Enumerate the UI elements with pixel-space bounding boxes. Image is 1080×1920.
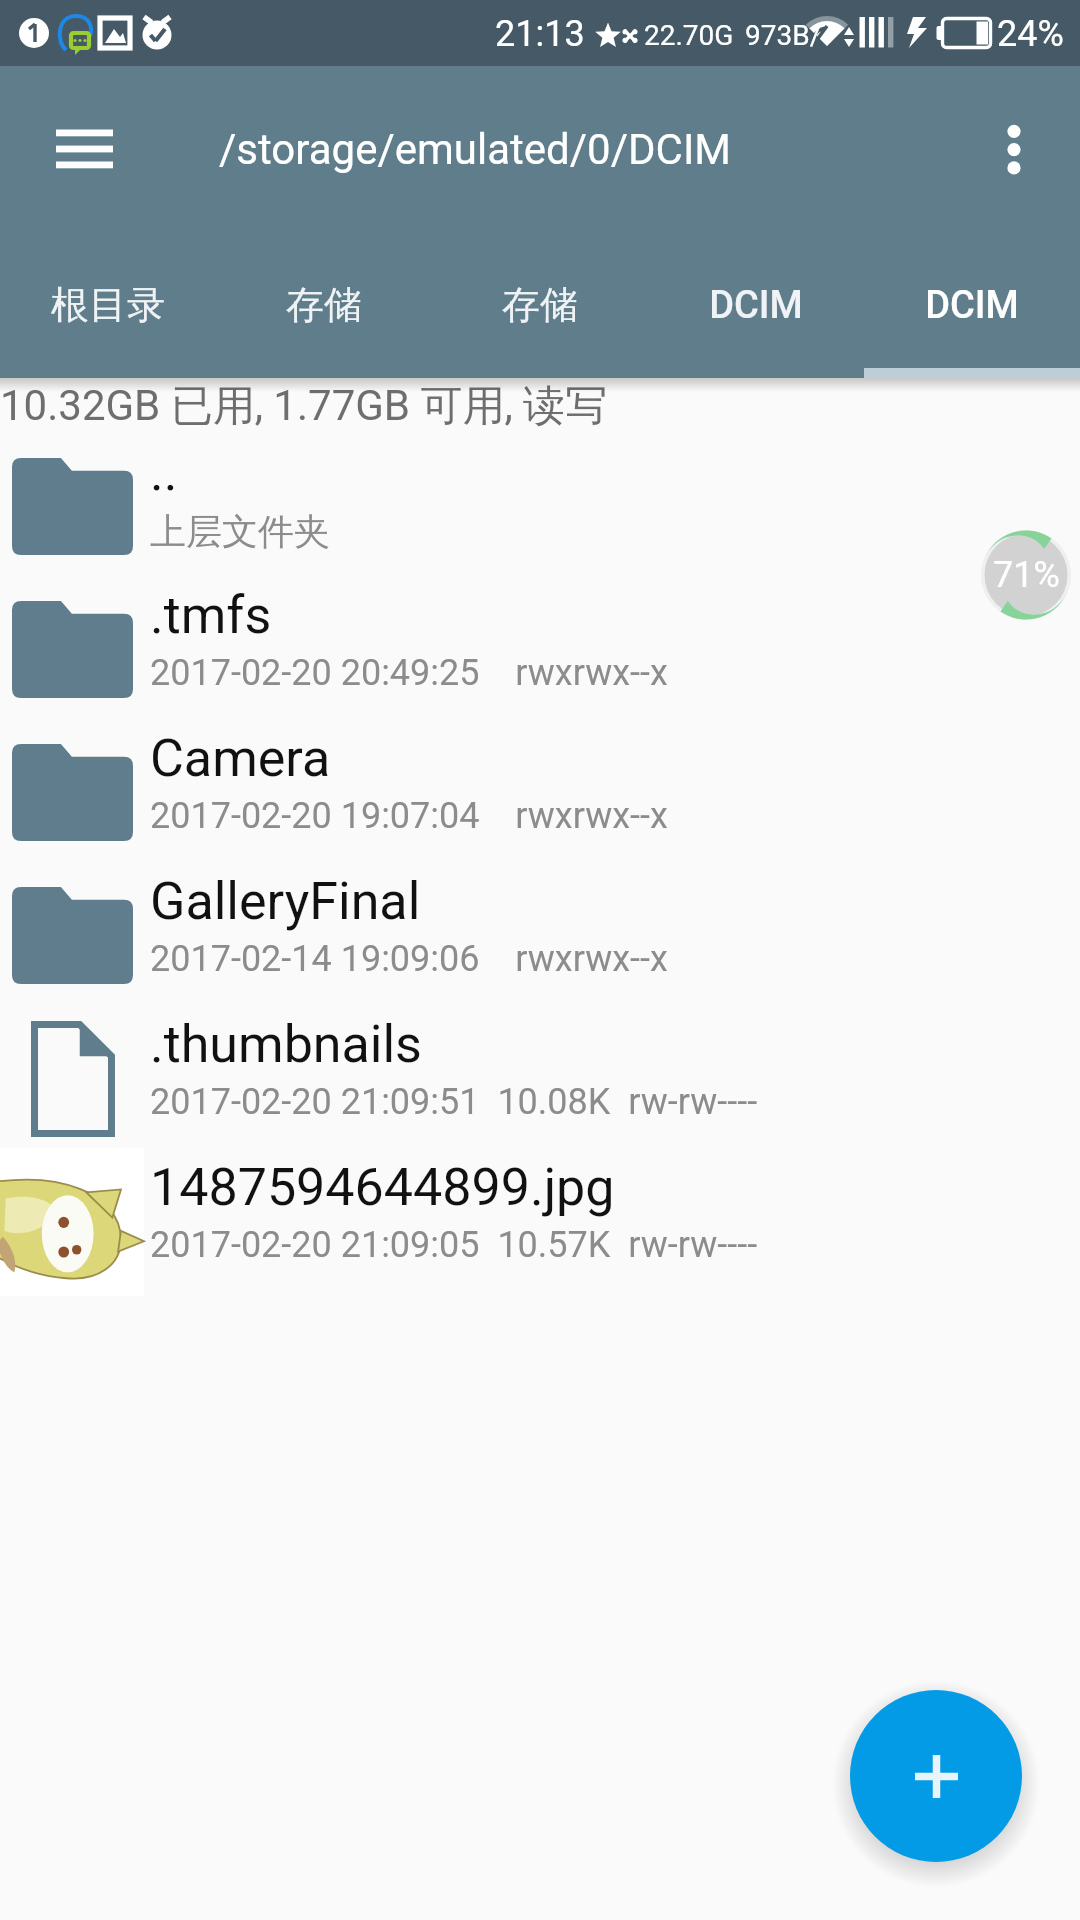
button[interactable]: More options	[972, 104, 1062, 194]
button[interactable]: 存储	[216, 232, 432, 378]
staticText: ..	[150, 442, 178, 503]
button[interactable]: DCIM	[864, 232, 1080, 378]
staticText: .thumbnails	[150, 1014, 422, 1075]
staticText: 2017-02-20 21:09:05 10.57K rw-rw----	[150, 1224, 758, 1266]
staticText: DCIM	[925, 283, 1019, 328]
staticText: 2017-02-20 19:07:04 rwxrwx--x	[150, 795, 668, 837]
button[interactable]: GalleryFinal	[0, 864, 1080, 1007]
staticText: 71%	[993, 554, 1060, 596]
staticText: 存储	[286, 281, 362, 329]
staticText: GalleryFinal	[150, 871, 421, 932]
staticText: 2017-02-20 20:49:25 rwxrwx--x	[150, 652, 668, 694]
staticText: .tmfs	[150, 585, 272, 646]
staticText: DCIM	[709, 283, 803, 328]
button[interactable]: Camera	[0, 721, 1080, 864]
button[interactable]: 存储	[432, 232, 648, 378]
staticText: /storage/emulated/0/DCIM	[219, 125, 731, 174]
button[interactable]: DCIM	[648, 232, 864, 378]
button[interactable]: 根目录	[0, 232, 216, 378]
button[interactable]: 1487594644899.jpg	[0, 1150, 1080, 1293]
staticText: Camera	[150, 728, 331, 789]
staticText: 2017-02-20 21:09:51 10.08K rw-rw----	[150, 1081, 758, 1123]
staticText: 973B/	[745, 19, 822, 52]
staticText: 22.70G	[644, 19, 734, 52]
staticText: 根目录	[51, 281, 165, 329]
staticText: 21:13	[495, 13, 585, 55]
staticText: 2017-02-14 19:09:06 rwxrwx--x	[150, 938, 668, 980]
staticText: 1487594644899.jpg	[150, 1157, 615, 1218]
button[interactable]: Open navigation drawer	[28, 93, 140, 205]
button[interactable]: .thumbnails	[0, 1007, 1080, 1150]
staticText: 存储	[502, 281, 578, 329]
button[interactable]: .tmfs	[0, 578, 1080, 721]
staticText: 24%	[997, 13, 1064, 55]
button[interactable]: Add	[850, 1690, 1022, 1862]
button[interactable]: Memory usage 71 percent	[981, 530, 1071, 620]
staticText: 上层文件夹	[150, 509, 330, 554]
staticText: 10.32GB 已用, 1.77GB 可用, 读写	[0, 380, 608, 433]
button[interactable]: ..	[0, 435, 1080, 578]
